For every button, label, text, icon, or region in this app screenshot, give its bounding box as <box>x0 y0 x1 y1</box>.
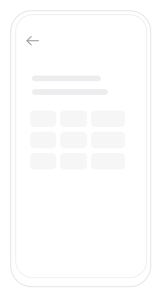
button[interactable]: Back <box>20 30 45 51</box>
